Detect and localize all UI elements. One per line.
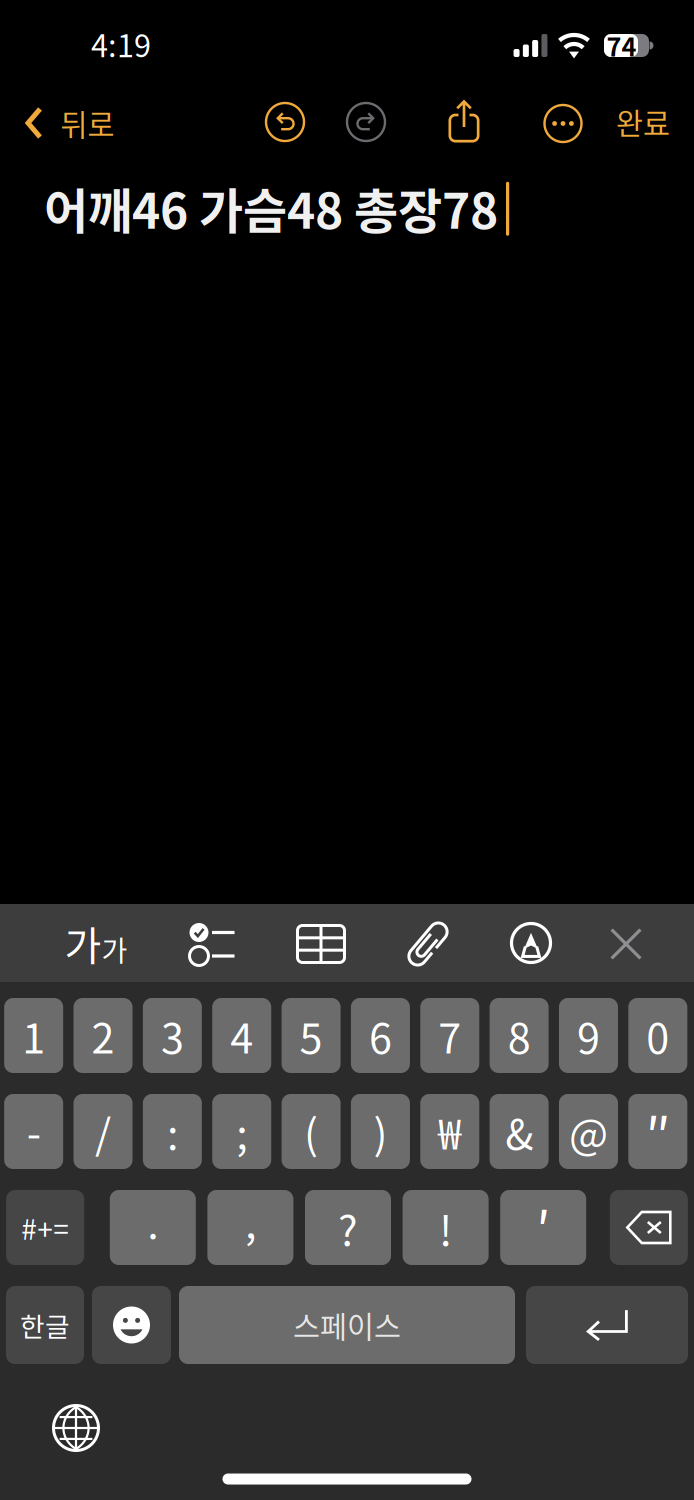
staticText: !	[439, 1198, 452, 1257]
staticText: 8	[508, 1006, 531, 1065]
staticText: 2	[91, 1006, 114, 1065]
staticText: 4:19	[91, 22, 151, 66]
button[interactable]: 키보드 닫기	[602, 920, 650, 968]
staticText: 1	[22, 1006, 45, 1065]
button[interactable]: ,	[207, 1190, 293, 1265]
button[interactable]: 스페이스	[179, 1286, 515, 1364]
staticText: /	[95, 1102, 111, 1161]
button[interactable]: 5	[282, 998, 341, 1073]
button[interactable]: 4	[212, 998, 271, 1073]
staticText: ′	[536, 1189, 551, 1266]
button[interactable]: 다음 키보드	[45, 1397, 106, 1458]
button[interactable]: 1	[4, 998, 63, 1073]
staticText: .	[147, 1191, 158, 1250]
button[interactable]: 줄바꿈	[526, 1286, 688, 1364]
button[interactable]: ″	[628, 1094, 687, 1169]
staticText: 5	[300, 1006, 323, 1065]
button[interactable]: 다시 실행	[347, 103, 385, 141]
button[interactable]: 8	[490, 998, 549, 1073]
button[interactable]: &	[490, 1094, 549, 1169]
button[interactable]: )	[351, 1094, 410, 1169]
staticText: 스페이스	[293, 1304, 401, 1346]
button[interactable]: 뒤로	[17, 92, 122, 154]
button[interactable]: ;	[212, 1094, 271, 1169]
staticText: 뒤로	[60, 102, 114, 144]
staticText: 한글	[20, 1306, 70, 1344]
button[interactable]: 가	[56, 906, 135, 980]
button[interactable]: 실행 취소	[266, 103, 304, 141]
button[interactable]: .	[110, 1190, 196, 1265]
button[interactable]: 한글	[6, 1286, 84, 1364]
staticText: @	[569, 1102, 608, 1161]
staticText: 어깨46 가슴48 총장78	[44, 173, 498, 242]
staticText: &	[505, 1102, 533, 1161]
button[interactable]: :	[143, 1094, 202, 1169]
button[interactable]: ₩	[420, 1094, 479, 1169]
button[interactable]: @	[559, 1094, 618, 1169]
button[interactable]: (	[282, 1094, 341, 1169]
staticText: 가	[101, 929, 127, 969]
staticText: ?	[338, 1198, 358, 1257]
staticText: ₩	[438, 1102, 461, 1161]
button[interactable]: 6	[351, 998, 410, 1073]
staticText: 완료	[616, 101, 670, 143]
staticText: ″	[645, 1095, 670, 1172]
button[interactable]: 완료	[608, 91, 678, 153]
button[interactable]: 7	[420, 998, 479, 1073]
button[interactable]: 체크리스트	[183, 917, 240, 971]
staticText: #+=	[21, 1207, 69, 1248]
button[interactable]: 첨부 파일	[402, 914, 454, 973]
staticText: 가	[64, 914, 101, 972]
button[interactable]: 0	[628, 998, 687, 1073]
button[interactable]: 더 보기	[544, 105, 581, 142]
staticText: ;	[236, 1102, 247, 1161]
button[interactable]: 표	[291, 919, 350, 968]
button[interactable]: ?	[305, 1190, 391, 1265]
staticText: 3	[161, 1006, 184, 1065]
staticText: 6	[369, 1006, 392, 1065]
button[interactable]: !	[403, 1190, 489, 1265]
staticText: )	[373, 1102, 387, 1161]
button[interactable]: 마크업	[505, 917, 556, 968]
button[interactable]: 2	[73, 998, 132, 1073]
staticText: 74	[606, 27, 636, 64]
button[interactable]: 공유	[448, 99, 479, 142]
button[interactable]: 이모티콘	[92, 1286, 171, 1364]
button[interactable]: /	[73, 1094, 132, 1169]
button[interactable]: 3	[143, 998, 202, 1073]
button[interactable]: 9	[559, 998, 618, 1073]
staticText: (	[304, 1102, 318, 1161]
button[interactable]: #+=	[6, 1190, 84, 1265]
staticText: -	[27, 1101, 41, 1160]
button[interactable]: ′	[500, 1190, 586, 1265]
staticText: 4	[230, 1006, 253, 1065]
staticText: 9	[577, 1006, 600, 1065]
staticText: 0	[646, 1006, 669, 1065]
staticText: ,	[245, 1191, 256, 1250]
button[interactable]: -	[4, 1094, 63, 1169]
staticText: 7	[438, 1006, 461, 1065]
button[interactable]: 지우기	[610, 1190, 688, 1265]
staticText: :	[167, 1102, 178, 1161]
